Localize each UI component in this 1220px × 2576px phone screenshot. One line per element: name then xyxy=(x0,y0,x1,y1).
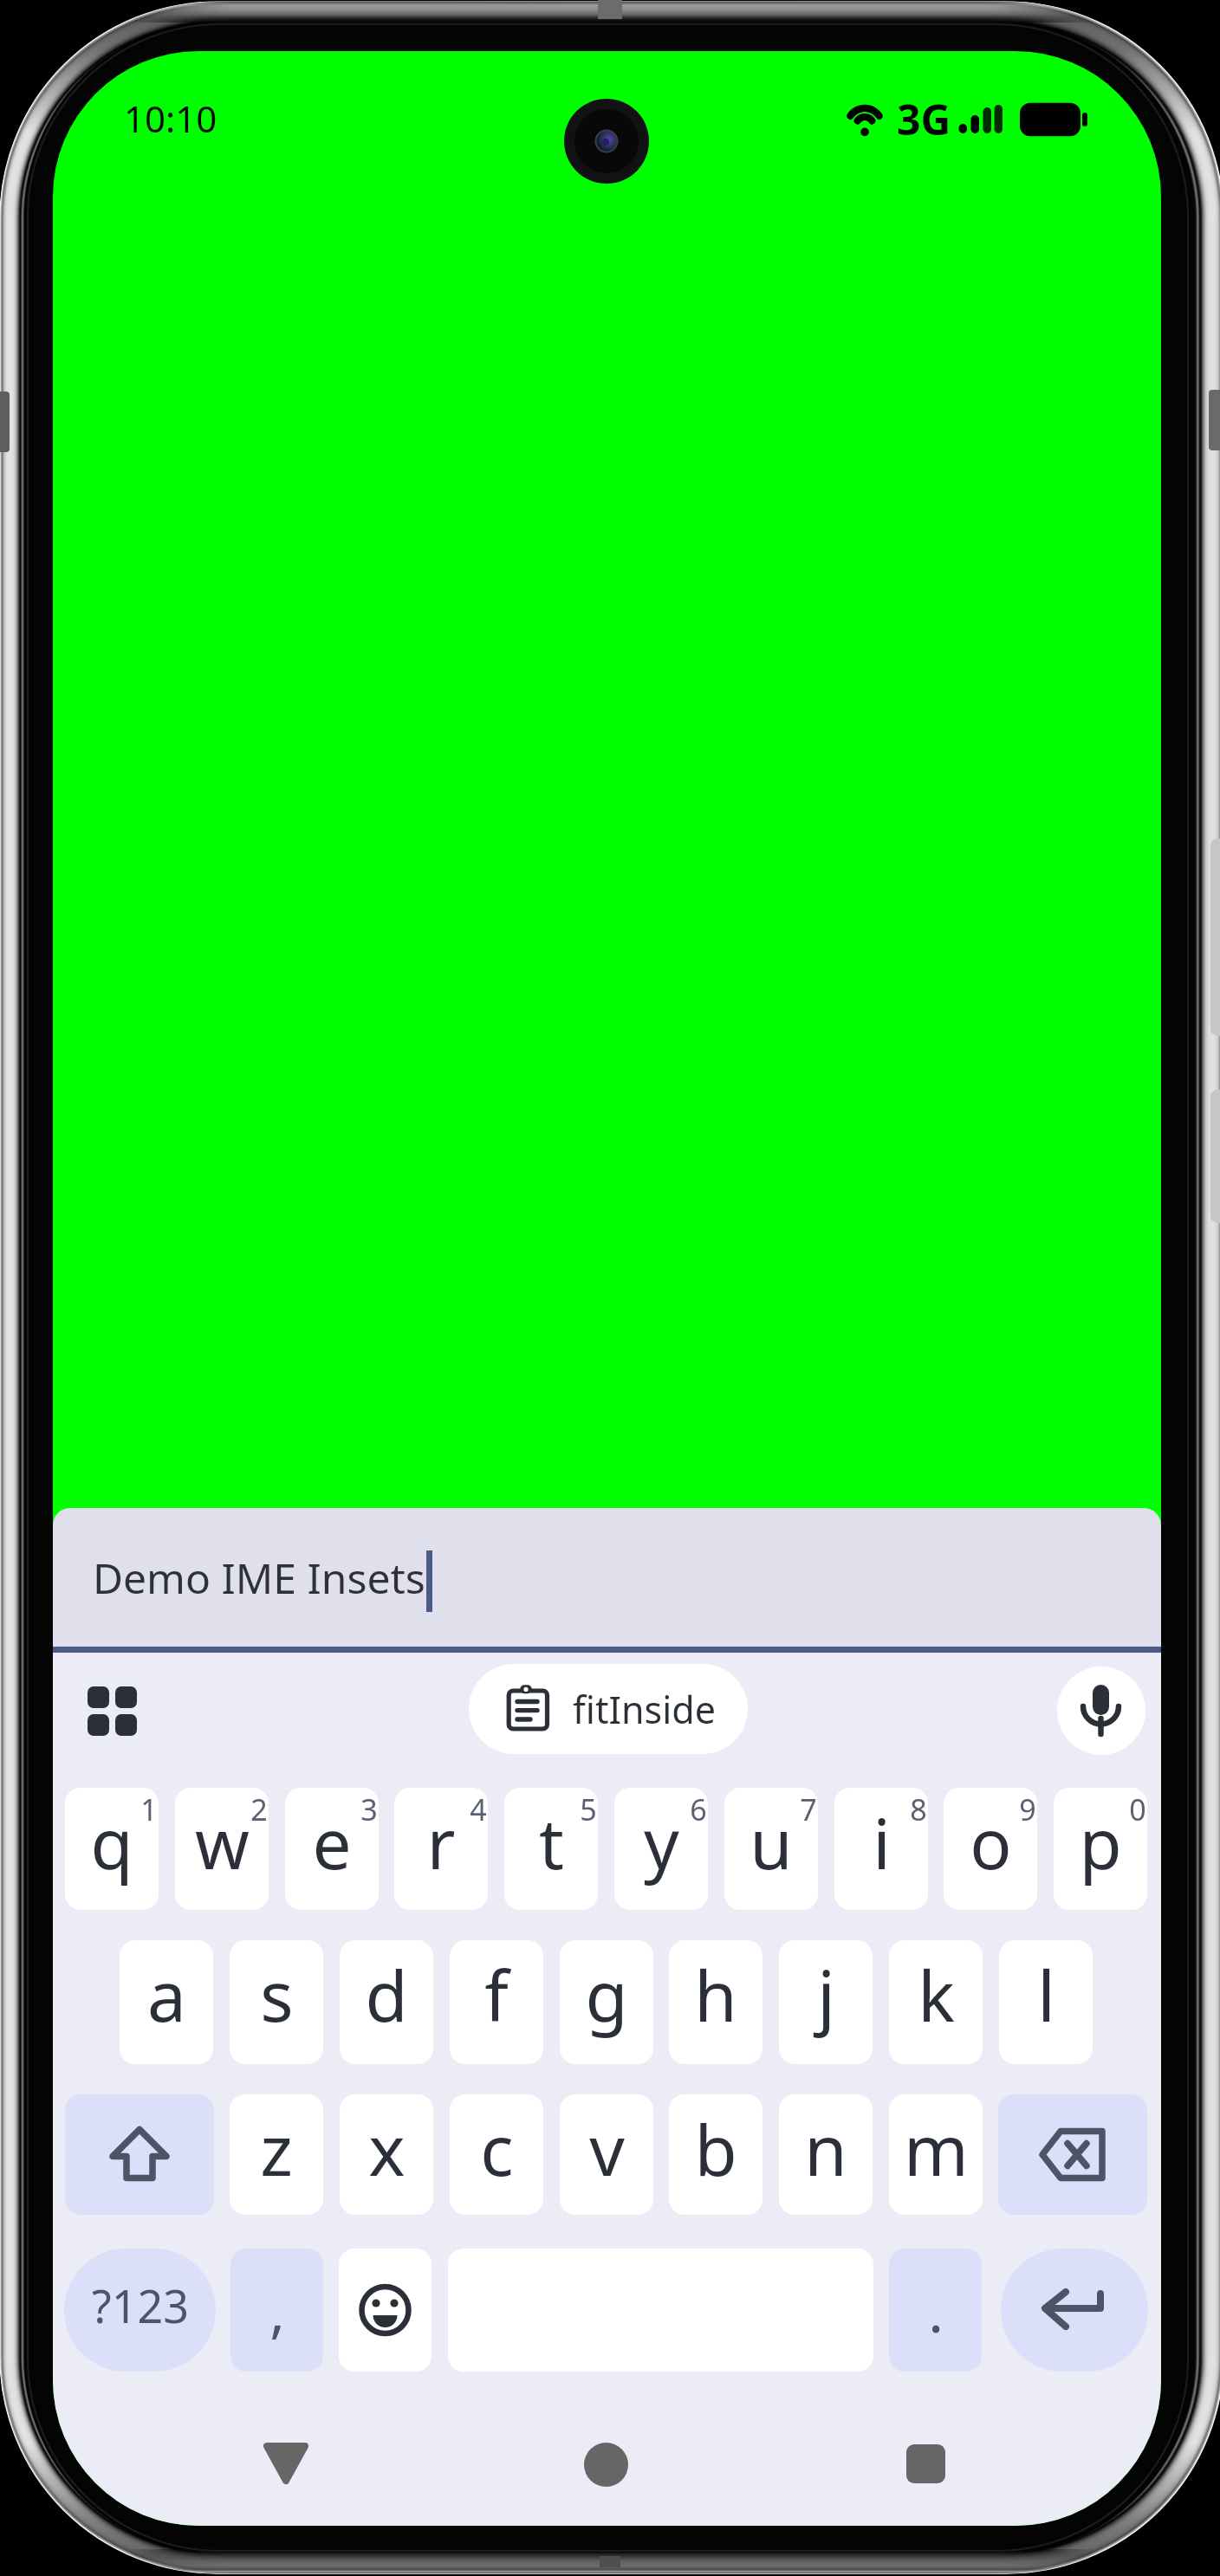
button[interactable]: q xyxy=(65,1788,159,1910)
button[interactable]: f xyxy=(450,1940,543,2064)
staticText: x xyxy=(368,2101,406,2196)
staticText: w xyxy=(195,1795,250,1889)
button[interactable]: k xyxy=(889,1940,983,2064)
staticText: s xyxy=(260,1947,294,2042)
staticText: , xyxy=(269,2271,285,2349)
staticText: 0 xyxy=(1129,1790,1146,1829)
staticText: d xyxy=(365,1947,408,2042)
button[interactable]: , xyxy=(230,2249,323,2372)
button[interactable]: l xyxy=(999,1940,1093,2064)
staticText: l xyxy=(1037,1947,1055,2042)
staticText: 4 xyxy=(470,1790,487,1829)
button[interactable]: fitInside xyxy=(469,1664,748,1754)
button[interactable]: Home xyxy=(584,2443,628,2487)
staticText: h xyxy=(694,1947,737,2042)
staticText: g xyxy=(585,1947,628,2042)
staticText: 7 xyxy=(800,1790,817,1829)
button[interactable]: b xyxy=(669,2094,762,2215)
staticText: 9 xyxy=(1019,1790,1036,1829)
staticText: i xyxy=(873,1795,891,1889)
staticText: y xyxy=(644,1795,679,1889)
button[interactable]: n xyxy=(779,2094,873,2215)
button[interactable]: Enter xyxy=(1001,2249,1148,2372)
staticText: o xyxy=(970,1795,1012,1889)
staticText: e xyxy=(312,1795,352,1889)
button[interactable]: Demo IME Insets xyxy=(53,1508,1161,1653)
staticText: k xyxy=(918,1947,955,2042)
button[interactable]: a xyxy=(120,1940,213,2064)
button[interactable]: u xyxy=(724,1788,818,1910)
button[interactable]: y xyxy=(614,1788,708,1910)
staticText: 2 xyxy=(250,1790,268,1829)
button[interactable]: w xyxy=(175,1788,269,1910)
staticText: 5 xyxy=(580,1790,597,1829)
button[interactable]: ?123 xyxy=(64,2249,216,2372)
button[interactable]: Shift xyxy=(65,2094,214,2215)
button[interactable]: e xyxy=(285,1788,379,1910)
staticText: a xyxy=(147,1947,186,2042)
staticText: q xyxy=(90,1795,133,1889)
button[interactable]: Emoji xyxy=(339,2249,432,2372)
staticText: f xyxy=(484,1947,509,2042)
staticText: 3 xyxy=(360,1790,378,1829)
staticText: r xyxy=(426,1795,456,1889)
staticText: c xyxy=(480,2101,514,2196)
button[interactable]: p xyxy=(1054,1788,1147,1910)
staticText: p xyxy=(1079,1795,1122,1889)
staticText: ?123 xyxy=(92,2275,189,2336)
button[interactable]: . xyxy=(889,2249,982,2372)
button[interactable]: m xyxy=(889,2094,983,2215)
staticText: 10:10 xyxy=(124,94,217,143)
button[interactable]: Keyboard layouts xyxy=(88,1686,137,1736)
button[interactable]: x xyxy=(340,2094,433,2215)
staticText: 1 xyxy=(140,1790,158,1829)
staticText: m xyxy=(904,2101,969,2196)
staticText: fitInside xyxy=(573,1684,716,1735)
button[interactable]: Backspace xyxy=(998,2094,1147,2215)
button[interactable]: Back xyxy=(263,2443,309,2486)
button[interactable]: c xyxy=(450,2094,543,2215)
staticText: u xyxy=(750,1795,793,1889)
button[interactable]: t xyxy=(504,1788,598,1910)
button[interactable]: z xyxy=(230,2094,323,2215)
button[interactable]: v xyxy=(560,2094,653,2215)
staticText: b xyxy=(694,2101,737,2196)
button[interactable]: j xyxy=(779,1940,873,2064)
button[interactable]: r xyxy=(394,1788,488,1910)
staticText: 8 xyxy=(910,1790,927,1829)
staticText: v xyxy=(589,2101,625,2196)
button[interactable]: o xyxy=(944,1788,1037,1910)
staticText: 6 xyxy=(690,1790,707,1829)
button[interactable]: h xyxy=(669,1940,762,2064)
button[interactable]: s xyxy=(230,1940,323,2064)
staticText: Demo IME Insets xyxy=(93,1550,425,1606)
staticText: t xyxy=(539,1795,564,1889)
button[interactable]: g xyxy=(560,1940,653,2064)
staticText: j xyxy=(817,1947,835,2042)
button[interactable]: i xyxy=(834,1788,928,1910)
button[interactable]: Voice input xyxy=(1057,1667,1145,1755)
staticText: z xyxy=(260,2101,293,2196)
staticText: n xyxy=(804,2101,847,2196)
button[interactable]: d xyxy=(340,1940,433,2064)
staticText: 3G xyxy=(897,91,951,147)
button[interactable]: Recent apps xyxy=(906,2444,945,2483)
staticText: . xyxy=(928,2271,944,2349)
